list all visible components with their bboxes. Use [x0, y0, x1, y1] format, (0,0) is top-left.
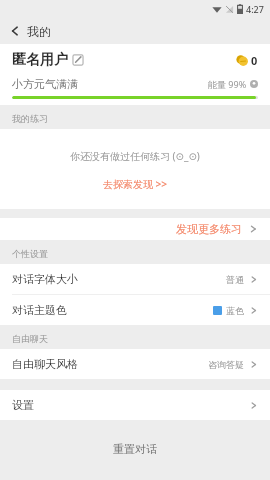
staticText: 设置 — [12, 398, 34, 412]
button[interactable]: 0 — [236, 53, 258, 68]
staticText: 对话主题色 — [12, 303, 67, 317]
button[interactable]: Edit name — [72, 54, 84, 66]
staticText: 重置对话 — [113, 442, 157, 456]
staticText: 咨询答疑 — [208, 359, 244, 370]
staticText: 我的 — [27, 24, 51, 39]
staticText: 普通 — [226, 274, 244, 285]
staticText: 我的练习 — [12, 113, 48, 124]
staticText: 能量 99% — [208, 78, 247, 90]
button[interactable]: 对话主题色 — [0, 295, 270, 325]
staticText: 个性设置 — [12, 248, 48, 259]
staticText: 4:27 — [246, 3, 264, 15]
staticText: 发现更多练习 — [176, 222, 242, 236]
staticText: 匿名用户 — [12, 51, 68, 69]
staticText: 自由聊天风格 — [12, 357, 78, 371]
button[interactable]: Back — [0, 18, 57, 44]
staticText: 对话字体大小 — [12, 272, 78, 286]
button[interactable]: 重置对话 — [0, 436, 270, 462]
staticText: 你还没有做过任何练习 (⊙_⊙) — [70, 149, 200, 163]
staticText: 去探索发现 >> — [103, 177, 168, 191]
button[interactable]: 去探索发现 >> — [99, 173, 172, 195]
staticText: 自由聊天 — [12, 333, 48, 344]
button[interactable]: 设置 — [0, 390, 270, 420]
button[interactable]: 对话字体大小 — [0, 264, 270, 294]
staticText: 蓝色 — [226, 305, 244, 316]
staticText: 0 — [251, 53, 258, 68]
button[interactable]: 自由聊天风格 — [0, 349, 270, 379]
button[interactable]: 发现更多练习 — [0, 218, 270, 240]
staticText: 小方元气满满 — [12, 77, 78, 91]
